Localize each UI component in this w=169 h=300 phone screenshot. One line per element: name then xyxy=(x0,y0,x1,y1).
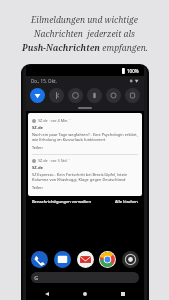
staticText: Noch ein paar Tage wegfahren? - Eine Psy… xyxy=(32,132,138,137)
staticText: Do., 15. Okt. xyxy=(31,78,57,84)
button[interactable]: SZ.de · vor 3 Std. ˅ xyxy=(28,155,142,194)
button[interactable]: Benachrichtigungen verwalten xyxy=(32,199,91,204)
staticText: Teilen xyxy=(32,145,43,150)
button[interactable]: Camera xyxy=(122,251,139,268)
button[interactable]: Messages xyxy=(54,251,71,268)
button[interactable]: Teilen xyxy=(32,145,43,150)
staticText: Kolumne von Khashoggi, Klage gegen Deuts… xyxy=(32,177,126,182)
button[interactable]: Quick setting 6 xyxy=(125,88,140,103)
staticText: Eilmeldungen und wichtige xyxy=(31,14,138,26)
staticText: SZ.de · vor 4 Min. ˅ xyxy=(38,118,71,123)
button[interactable]: Quick setting 5 xyxy=(106,88,121,103)
staticText: SZ.de xyxy=(32,125,44,131)
staticText: SZ.de · vor 3 Std. ˅ xyxy=(38,158,70,163)
staticText: G xyxy=(34,274,39,282)
staticText: wie Erholung im Kurzurlaub funktioniert xyxy=(32,137,106,142)
button[interactable]: Teilen xyxy=(32,185,43,190)
button[interactable]: Phone xyxy=(31,251,48,268)
button[interactable]: Quick setting 1 xyxy=(30,88,45,103)
button[interactable]: Recents xyxy=(118,289,128,299)
button[interactable]: Chrome xyxy=(99,251,116,268)
button[interactable]: Search xyxy=(31,272,139,283)
button[interactable]: Home xyxy=(80,289,90,299)
staticText: empfangen. xyxy=(100,42,148,54)
staticText: SZ Espresso - Kein Fortschritt bei Brexi… xyxy=(32,172,128,177)
staticText: Teilen xyxy=(32,185,43,190)
button[interactable]: Quick setting 4 xyxy=(87,88,102,103)
staticText: Push-Nachrichten xyxy=(22,42,100,54)
button[interactable]: Quick setting 3 xyxy=(68,88,83,103)
staticText: 100% xyxy=(127,68,139,74)
button[interactable]: Quick setting 2 xyxy=(49,88,64,103)
button[interactable]: Gmail xyxy=(77,251,94,268)
staticText: Alle löschen xyxy=(115,199,138,204)
staticText: Benachrichtigungen verwalten xyxy=(32,199,91,204)
button[interactable]: Alle löschen xyxy=(115,199,138,204)
button[interactable]: Back xyxy=(42,289,52,299)
button[interactable]: SZ.de · vor 4 Min. ˅ xyxy=(28,115,142,154)
staticText: Nachrichten jederzeit als xyxy=(34,28,135,40)
staticText: SZ.de xyxy=(32,165,44,171)
